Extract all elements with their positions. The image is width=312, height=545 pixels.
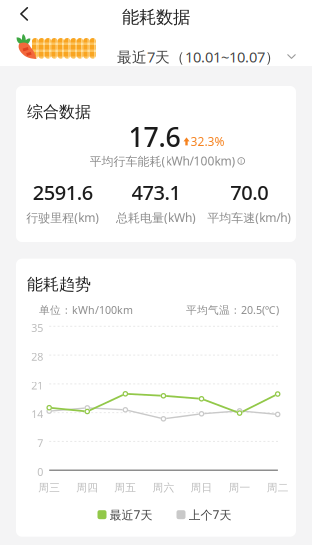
staticText: 单位：kWh/100km bbox=[39, 303, 133, 317]
staticText: 能耗趋势 bbox=[27, 275, 91, 294]
staticText: 2591.6 bbox=[33, 179, 93, 206]
staticText: 17.6 bbox=[128, 119, 180, 154]
staticText: 平均行车能耗(kWh/100km) bbox=[89, 153, 235, 169]
staticText: 平均车速(km/h) bbox=[207, 210, 291, 225]
staticText: 最近7天（10.01~10.07） bbox=[117, 47, 280, 66]
staticText: 473.1 bbox=[131, 179, 180, 206]
staticText: 周一 bbox=[229, 481, 251, 494]
staticText: 周六 bbox=[152, 481, 174, 494]
staticText: 最近7天 bbox=[109, 507, 152, 523]
staticText: 综合数据 bbox=[27, 102, 91, 122]
staticText: i bbox=[240, 156, 242, 165]
staticText: 总耗电量(kWh) bbox=[116, 210, 196, 225]
staticText: 周二 bbox=[267, 481, 289, 494]
staticText: 14 bbox=[31, 407, 43, 421]
button[interactable]: 选择日期范围 bbox=[101, 38, 312, 75]
staticText: 能耗数据 bbox=[122, 6, 190, 28]
staticText: 周三 bbox=[38, 481, 60, 494]
staticText: 周四 bbox=[76, 481, 98, 494]
staticText: 32.3% bbox=[190, 133, 224, 149]
staticText: 70.0 bbox=[230, 179, 268, 206]
staticText: 7 bbox=[37, 436, 43, 450]
button[interactable]: 返回 bbox=[0, 0, 44, 30]
staticText: 28 bbox=[31, 350, 43, 364]
staticText: 周日 bbox=[190, 481, 212, 494]
staticText: 35 bbox=[31, 321, 43, 335]
staticText: 平均气温：20.5(℃) bbox=[186, 303, 279, 317]
staticText: 周五 bbox=[114, 481, 136, 494]
staticText: 21 bbox=[31, 378, 43, 393]
staticText: 行驶里程(km) bbox=[26, 210, 99, 225]
staticText: 上个7天 bbox=[188, 507, 231, 523]
staticText: 0 bbox=[37, 465, 43, 479]
